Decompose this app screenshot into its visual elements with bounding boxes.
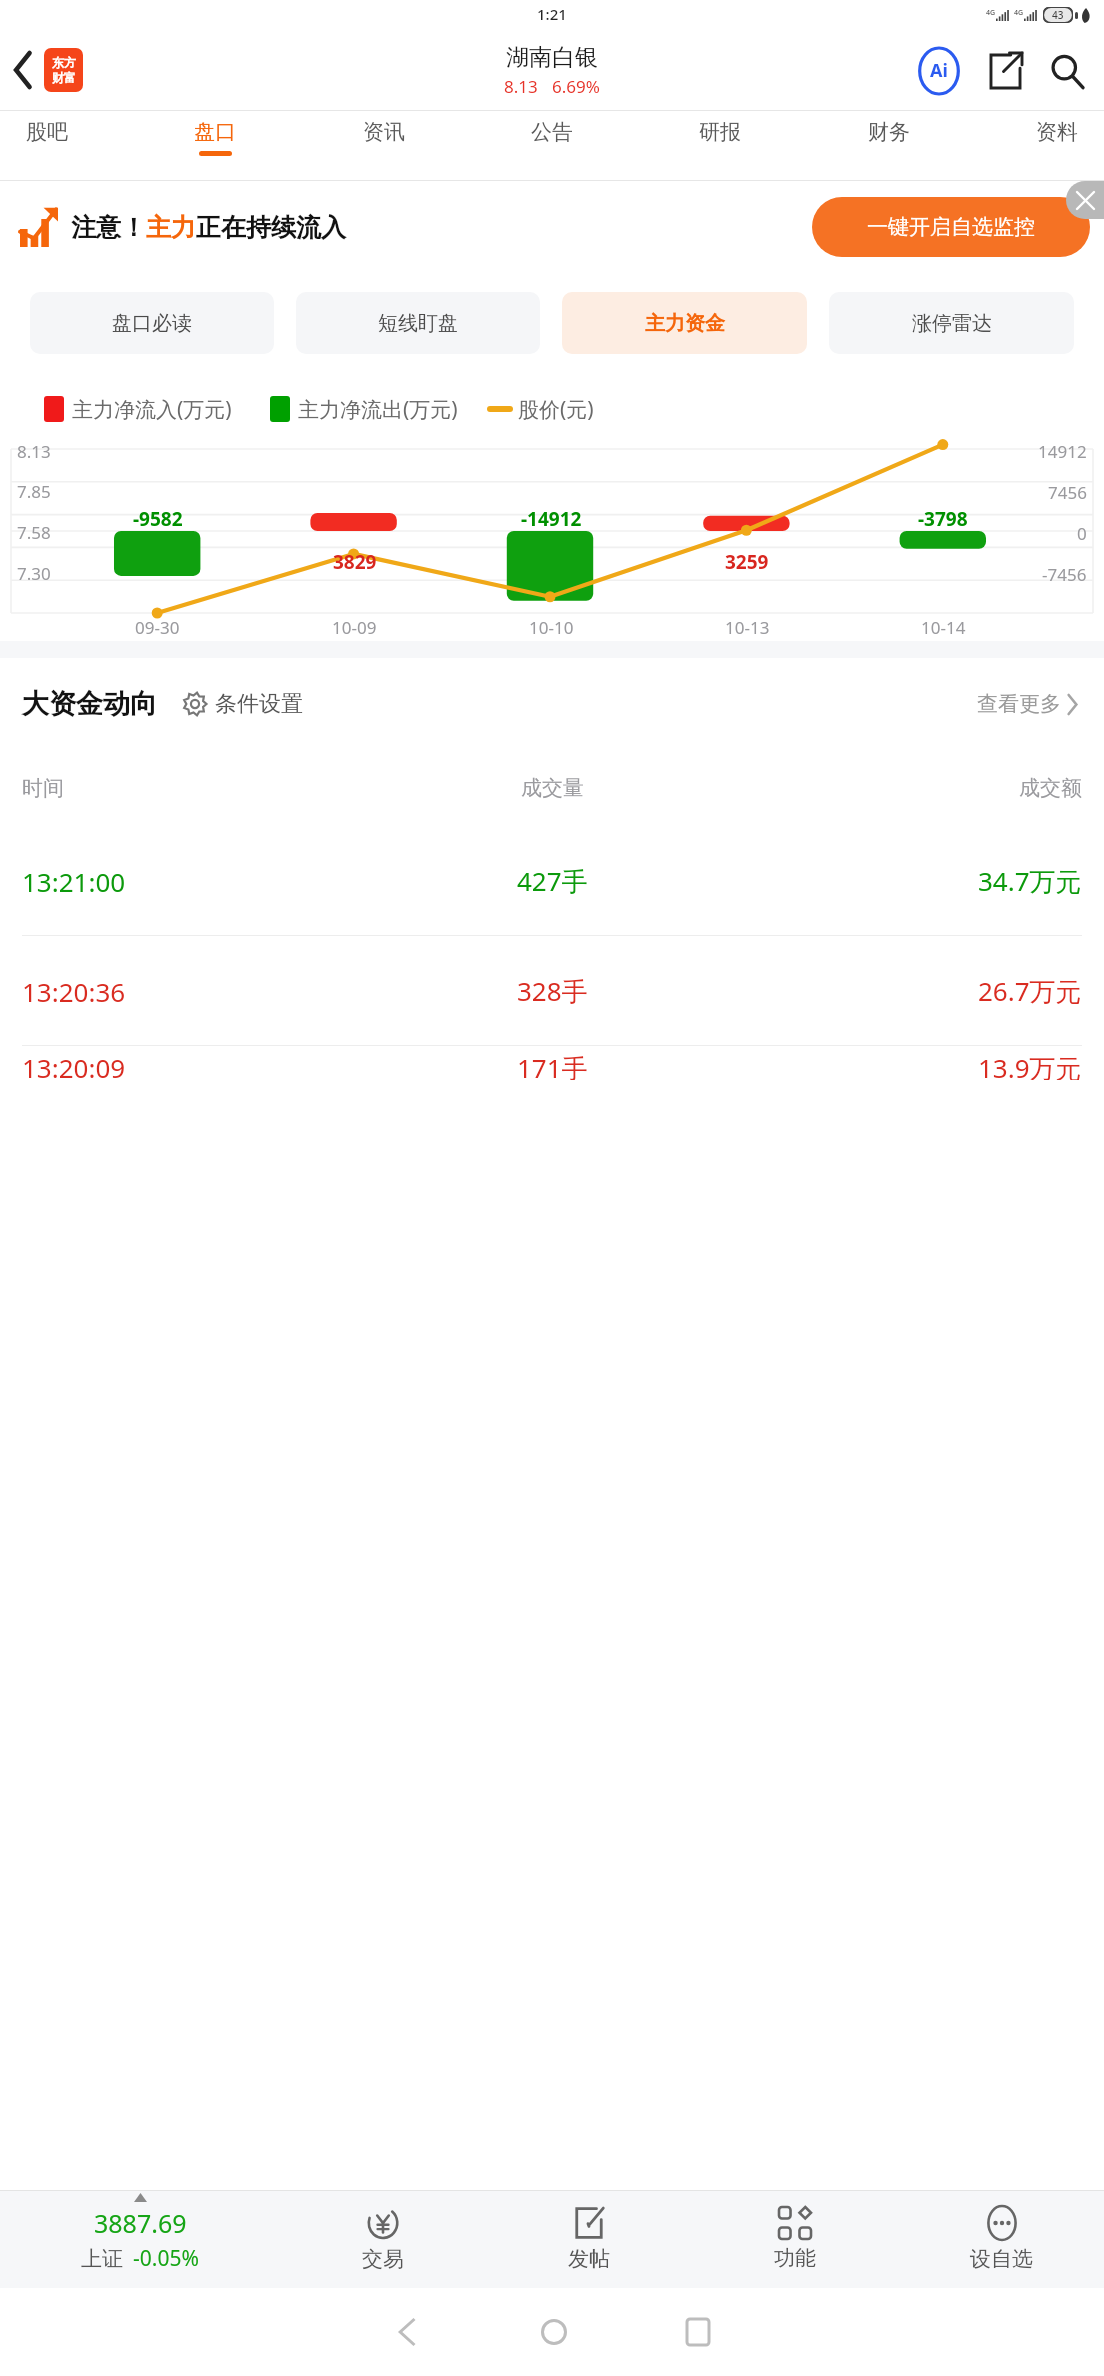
- staticText: 交易: [362, 2246, 404, 2272]
- staticText: 资讯: [363, 119, 405, 145]
- staticText: 427手: [517, 863, 588, 899]
- staticText: 公告: [531, 119, 573, 145]
- staticText: 一键开启自选监控: [867, 214, 1035, 240]
- staticText: 09-30: [135, 616, 180, 639]
- staticText: 3829: [333, 549, 377, 575]
- staticText: 171手: [517, 1050, 588, 1080]
- staticText: 10-10: [529, 616, 574, 639]
- button[interactable]: 时间: [0, 750, 1104, 826]
- staticText: 7.85: [17, 480, 51, 503]
- staticText: Ai: [930, 58, 948, 83]
- staticText: 8.13: [504, 75, 538, 98]
- button[interactable]: 13:20:09: [0, 1046, 1104, 1076]
- staticText: 7456: [1048, 481, 1087, 504]
- staticText: 大资金动向: [22, 687, 157, 721]
- button[interactable]: 交易: [280, 2190, 486, 2288]
- staticText: 26.7万元: [978, 973, 1082, 1009]
- staticText: 盘口: [194, 119, 236, 145]
- button[interactable]: 资讯: [355, 111, 413, 164]
- staticText: 3887.69: [94, 2206, 187, 2240]
- button[interactable]: Search: [1044, 48, 1090, 94]
- staticText: -7456: [1042, 563, 1087, 586]
- button[interactable]: 条件设置: [179, 686, 307, 722]
- staticText: 查看更多: [977, 691, 1061, 717]
- staticText: 湖南白银: [506, 43, 598, 72]
- staticText: 成交量: [521, 775, 584, 801]
- staticText: -9582: [133, 506, 183, 532]
- staticText: 财富: [52, 70, 76, 85]
- staticText: -0.05%: [133, 2244, 199, 2273]
- staticText: 条件设置: [215, 690, 303, 718]
- staticText: 主力净流入(万元): [72, 395, 232, 424]
- staticText: 资料: [1036, 119, 1078, 145]
- button[interactable]: 一键开启自选监控: [812, 197, 1090, 257]
- button[interactable]: 股吧: [18, 111, 76, 164]
- staticText: 43: [1052, 8, 1064, 22]
- staticText: 主力: [146, 212, 196, 243]
- button[interactable]: 资料: [1028, 111, 1086, 164]
- staticText: 4G: [1014, 8, 1024, 18]
- button[interactable]: 短线盯盘: [296, 292, 540, 354]
- staticText: 7.30: [17, 562, 51, 585]
- staticText: 股吧: [26, 119, 68, 145]
- button[interactable]: 功能: [692, 2190, 898, 2288]
- staticText: 功能: [774, 2245, 816, 2271]
- staticText: -3798: [918, 506, 968, 532]
- button[interactable]: 财务: [860, 111, 918, 164]
- staticText: 328手: [517, 973, 588, 1009]
- button[interactable]: 3887.69: [0, 2190, 280, 2288]
- staticText: 注意！: [71, 212, 146, 243]
- button[interactable]: 盘口必读: [30, 292, 274, 354]
- button[interactable]: 查看更多: [973, 687, 1082, 721]
- staticText: 研报: [699, 119, 741, 145]
- staticText: 主力净流出(万元): [298, 395, 458, 424]
- staticText: 短线盯盘: [378, 311, 458, 336]
- staticText: 13.9万元: [978, 1050, 1082, 1080]
- staticText: 14912: [1038, 440, 1087, 463]
- staticText: 涨停雷达: [912, 311, 992, 336]
- staticText: 股价(元): [518, 395, 594, 424]
- staticText: 盘口必读: [112, 311, 192, 336]
- staticText: 13:20:09: [22, 1050, 126, 1080]
- staticText: 0: [1077, 522, 1087, 545]
- button[interactable]: AI: [915, 47, 962, 94]
- staticText: 3259: [725, 549, 769, 575]
- button[interactable]: 盘口: [186, 111, 244, 164]
- button[interactable]: 公告: [523, 111, 581, 164]
- button[interactable]: Back: [6, 42, 91, 98]
- staticText: 发帖: [568, 2246, 610, 2272]
- staticText: 34.7万元: [978, 863, 1082, 899]
- staticText: -14912: [521, 506, 582, 532]
- staticText: 10-13: [725, 616, 770, 639]
- staticText: 6.69%: [552, 75, 600, 98]
- button[interactable]: 涨停雷达: [829, 292, 1074, 354]
- staticText: 13:20:36: [22, 974, 126, 1009]
- staticText: 13:21:00: [22, 864, 126, 899]
- staticText: 正在持续流入: [196, 212, 346, 243]
- staticText: 上证: [81, 2246, 123, 2272]
- button[interactable]: 研报: [691, 111, 749, 164]
- staticText: 10-14: [921, 616, 966, 639]
- staticText: 财务: [868, 119, 910, 145]
- staticText: 成交额: [1019, 775, 1082, 801]
- staticText: 10-09: [332, 616, 377, 639]
- staticText: 主力资金: [645, 311, 725, 336]
- button[interactable]: 主力资金: [562, 292, 807, 354]
- staticText: 1:21: [537, 4, 567, 24]
- button[interactable]: 13:20:36: [0, 936, 1104, 1046]
- staticText: 8.13: [17, 440, 51, 463]
- button[interactable]: 发帖: [486, 2190, 692, 2288]
- button[interactable]: 设自选: [898, 2190, 1104, 2288]
- button[interactable]: Share: [982, 48, 1028, 94]
- button[interactable]: 13:21:00: [0, 826, 1104, 936]
- staticText: 东方: [52, 55, 76, 70]
- staticText: 7.58: [17, 521, 51, 544]
- staticText: 设自选: [970, 2246, 1033, 2272]
- staticText: 4G: [986, 8, 996, 18]
- button[interactable]: Close: [1066, 181, 1104, 219]
- staticText: 时间: [22, 775, 64, 801]
